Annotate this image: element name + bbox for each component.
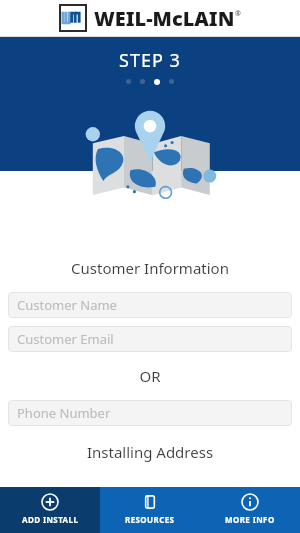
staticText: ADD INSTALL	[22, 514, 79, 525]
staticText: Phone Number	[17, 404, 111, 422]
staticText: RESOURCES	[125, 514, 175, 525]
button[interactable]: RESOURCES	[100, 487, 200, 533]
staticText: Customer Information	[8, 258, 292, 278]
staticText: STEP 3	[119, 48, 181, 73]
staticText: MORE INFO	[225, 514, 275, 525]
staticText: ®	[235, 9, 241, 19]
button[interactable]: Phone Number	[8, 400, 292, 426]
button[interactable]: Customer Name	[8, 292, 292, 318]
staticText: Customer Email	[17, 330, 114, 348]
staticText: WEIL-McLAIN	[94, 5, 235, 32]
button[interactable]: ADD INSTALL	[0, 487, 100, 533]
staticText: Customer Name	[17, 296, 117, 314]
button[interactable]: Customer Email	[8, 326, 292, 352]
staticText: OR	[8, 366, 292, 386]
staticText: Installing Address	[8, 442, 292, 462]
button[interactable]: MORE INFO	[200, 487, 300, 533]
